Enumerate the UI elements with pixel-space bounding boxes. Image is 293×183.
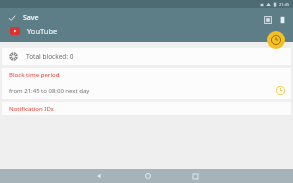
staticText: Total blocked: 0 — [26, 52, 74, 61]
button[interactable]: Total blocked: 0 — [2, 48, 291, 65]
button[interactable]: from 21:45 to 08:00 next day — [2, 82, 291, 99]
button[interactable]: YouTube — [0, 24, 68, 38]
button[interactable]: Home — [142, 170, 154, 182]
staticText: Notification IDs — [9, 105, 54, 113]
button[interactable]: Copy settings — [260, 12, 276, 28]
staticText: 21:45 — [279, 2, 290, 7]
staticText: Block time period — [9, 71, 60, 79]
button[interactable]: Set schedule — [267, 31, 285, 49]
staticText: from 21:45 to 08:00 next day — [9, 87, 276, 95]
staticText: YouTube — [27, 26, 58, 36]
button[interactable]: Delete — [276, 12, 289, 28]
button[interactable]: Back — [93, 170, 105, 182]
button[interactable]: Recent apps — [190, 171, 201, 182]
button[interactable]: Save — [0, 11, 49, 25]
staticText: Save — [23, 13, 39, 23]
